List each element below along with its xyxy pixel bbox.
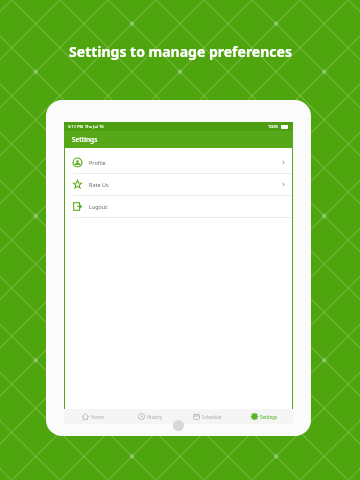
staticText: Schedule <box>202 414 222 420</box>
button[interactable]: Home <box>64 409 122 424</box>
button[interactable]: Logout <box>65 196 292 217</box>
staticText: Rate Us <box>89 181 109 188</box>
button[interactable]: Profile <box>65 152 292 173</box>
staticText: Home <box>91 414 104 420</box>
staticText: Profile <box>89 159 106 166</box>
staticText: Settings <box>72 135 98 144</box>
staticText: Logout <box>89 203 108 210</box>
staticText: Settings to manage preferences <box>69 42 292 61</box>
staticText: Settings <box>260 414 278 420</box>
staticText: 5:11 PM Thu Jul 16 <box>68 124 104 129</box>
button[interactable]: Schedule <box>179 409 236 424</box>
button[interactable]: Rate Us <box>65 174 292 195</box>
staticText: 100% <box>268 124 279 129</box>
button[interactable]: History <box>122 409 179 424</box>
button[interactable]: Settings <box>236 409 293 424</box>
staticText: History <box>147 414 163 420</box>
